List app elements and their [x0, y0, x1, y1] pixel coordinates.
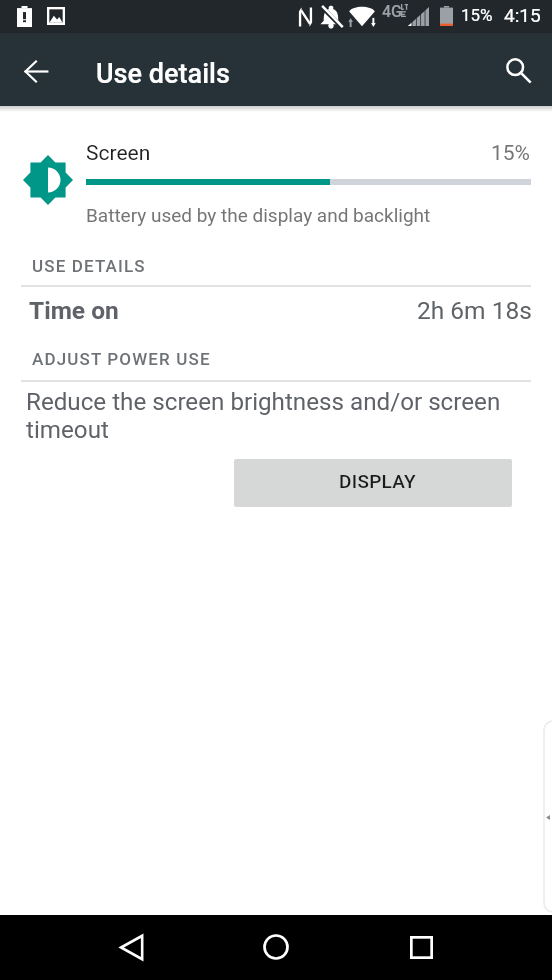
staticText: 15%: [461, 5, 493, 25]
staticText: Use details: [96, 58, 230, 90]
button[interactable]: Navigate up: [13, 47, 61, 95]
staticText: 4:15: [504, 4, 541, 26]
staticText: 2h 6m 18s: [417, 296, 532, 325]
staticText: ADJUST POWER USE: [32, 349, 211, 369]
button[interactable]: Recent apps: [397, 923, 445, 971]
button[interactable]: Search: [494, 46, 542, 94]
staticText: USE DETAILS: [32, 256, 146, 276]
button[interactable]: DISPLAY: [234, 459, 512, 507]
staticText: Time on: [29, 296, 119, 325]
staticText: Reduce the screen brightness and/or scre…: [26, 388, 530, 444]
button[interactable]: Home: [252, 923, 300, 971]
staticText: Battery used by the display and backligh…: [86, 204, 431, 226]
staticText: 15%: [491, 141, 530, 166]
staticText: Screen: [86, 141, 151, 166]
staticText: 4G: [382, 2, 402, 21]
button[interactable]: Back: [107, 923, 155, 971]
staticText: DISPLAY: [339, 470, 416, 492]
